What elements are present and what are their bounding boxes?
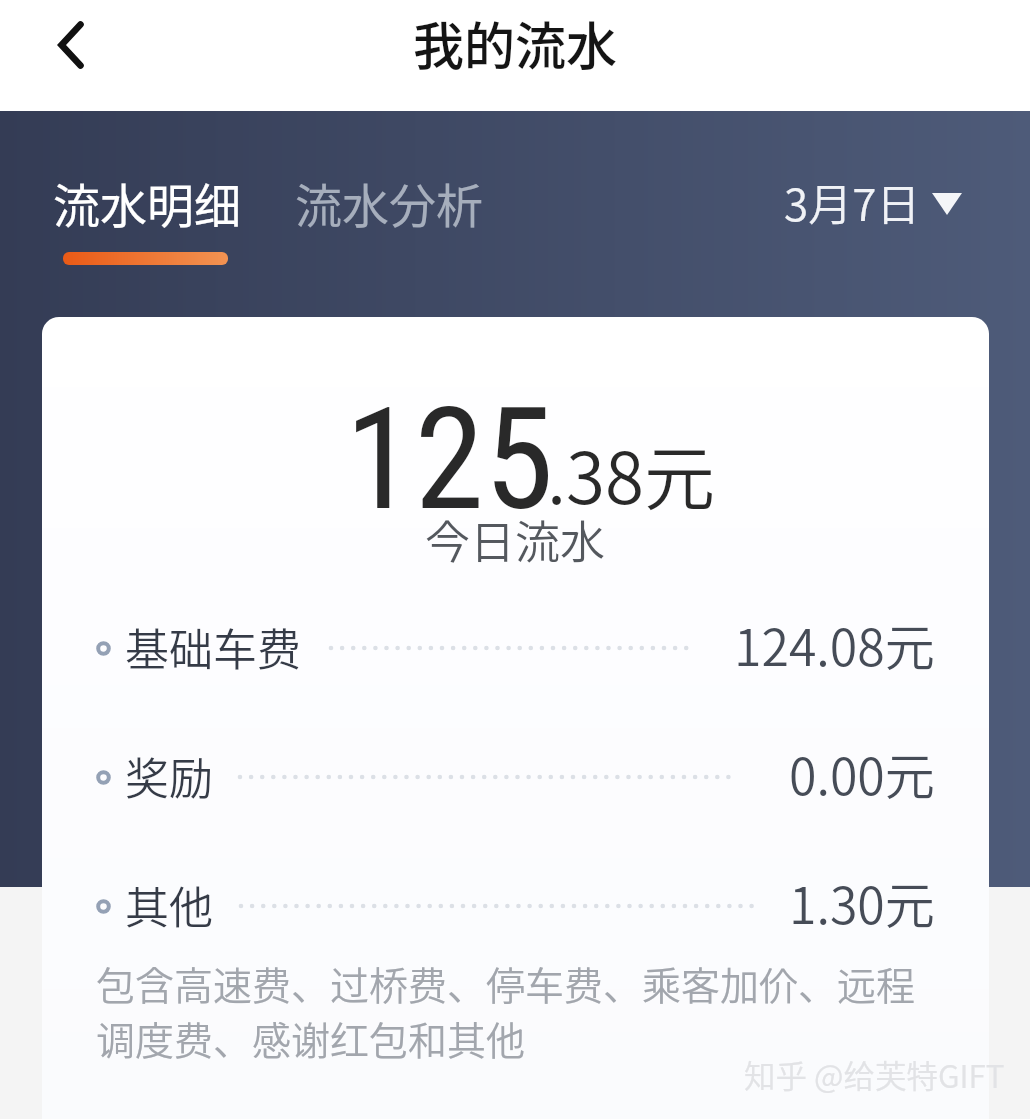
staticText: 知乎 @给芙特GIFT bbox=[744, 1051, 1005, 1097]
button[interactable]: 基础车费 bbox=[42, 606, 989, 686]
staticText: 包含高速费、过桥费、停车费、乘客加价、远程 调度费、感谢红包和其他 bbox=[96, 955, 916, 1066]
staticText: 124.08元 bbox=[734, 608, 935, 680]
staticText: 流水分析 bbox=[295, 168, 483, 236]
button[interactable]: 流水分析 bbox=[295, 168, 483, 236]
button[interactable]: 其他 bbox=[42, 864, 989, 944]
staticText: 3月7日 bbox=[784, 170, 921, 234]
staticText: 奖励 bbox=[125, 744, 213, 808]
staticText: .38元 bbox=[547, 422, 716, 525]
staticText: 流水明细 bbox=[53, 168, 241, 236]
button[interactable]: 3月7日 bbox=[784, 170, 962, 234]
staticText: 基础车费 bbox=[125, 615, 301, 679]
staticText: 其他 bbox=[125, 873, 213, 937]
button[interactable]: Back bbox=[12, 0, 130, 100]
staticText: 1.30元 bbox=[789, 866, 935, 938]
staticText: 我的流水 bbox=[413, 6, 618, 80]
staticText: 0.00元 bbox=[789, 737, 935, 809]
staticText: 125 bbox=[345, 377, 554, 542]
staticText: 今日流水 bbox=[425, 507, 606, 572]
button[interactable]: 奖励 bbox=[42, 735, 989, 815]
button[interactable]: 流水明细 bbox=[53, 168, 241, 236]
